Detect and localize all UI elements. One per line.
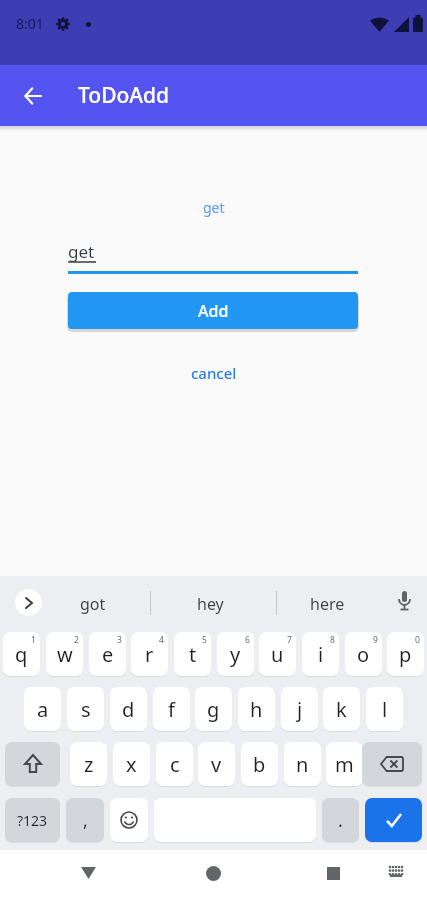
staticText: n	[296, 751, 309, 778]
staticText: e	[102, 641, 114, 668]
button[interactable]: l	[366, 687, 403, 731]
button[interactable]: b	[241, 742, 278, 786]
staticText: d	[122, 696, 135, 723]
button[interactable]: t	[174, 632, 211, 676]
staticText: 8:01	[16, 14, 44, 33]
button[interactable]: r	[131, 632, 168, 676]
button[interactable]: ,	[66, 798, 104, 842]
button[interactable]: j	[281, 687, 318, 731]
staticText: t	[189, 641, 197, 668]
staticText: ,	[83, 808, 88, 833]
staticText: f	[168, 696, 175, 723]
button[interactable]: e	[89, 632, 126, 676]
staticText: g	[207, 696, 220, 723]
button[interactable]: o	[345, 632, 382, 676]
button[interactable]: here	[310, 593, 345, 615]
staticText: y	[230, 641, 241, 668]
staticText: get	[203, 198, 225, 217]
button[interactable]: cancel	[191, 363, 237, 383]
staticText: q	[15, 641, 28, 668]
staticText: 4	[159, 634, 164, 646]
button[interactable]: f	[153, 687, 190, 731]
staticText: k	[336, 696, 347, 723]
staticText: get	[68, 240, 95, 263]
staticText: 6	[245, 634, 250, 646]
staticText: r	[145, 641, 154, 668]
staticText: m	[335, 751, 354, 778]
button[interactable]: m	[326, 742, 363, 786]
staticText: b	[253, 751, 266, 778]
staticText: w	[57, 641, 73, 668]
button[interactable]: ?123	[5, 798, 60, 842]
button[interactable]: v	[198, 742, 235, 786]
staticText: u	[271, 641, 284, 668]
button[interactable]	[68, 853, 108, 893]
staticText: c	[170, 751, 180, 778]
button[interactable]	[365, 798, 422, 842]
staticText: ?123	[17, 811, 48, 830]
button[interactable]: q	[3, 632, 40, 676]
staticText: h	[250, 696, 263, 723]
staticText: x	[126, 751, 137, 778]
staticText: a	[37, 696, 49, 723]
button[interactable]: w	[46, 632, 83, 676]
staticText: j	[297, 696, 303, 723]
button[interactable]: u	[259, 632, 296, 676]
button[interactable]: got	[80, 593, 106, 615]
button[interactable]	[15, 589, 42, 616]
button[interactable]: Add	[68, 292, 358, 329]
button[interactable]	[398, 591, 411, 615]
button[interactable]: z	[70, 742, 107, 786]
button[interactable]	[362, 742, 422, 786]
button[interactable]: c	[156, 742, 193, 786]
staticText: 9	[373, 634, 378, 646]
staticText: 8	[330, 634, 335, 646]
staticText: 2	[74, 634, 79, 646]
button[interactable]: i	[302, 632, 339, 676]
button[interactable]: k	[323, 687, 360, 731]
staticText: l	[382, 696, 388, 723]
staticText: o	[357, 641, 370, 668]
button[interactable]: hey	[197, 593, 224, 615]
staticText: i	[318, 641, 324, 668]
button[interactable]: p	[387, 632, 424, 676]
button[interactable]: s	[67, 687, 104, 731]
button[interactable]	[5, 742, 60, 786]
staticText: ToDoAdd	[78, 81, 170, 110]
staticText: .	[338, 808, 343, 833]
staticText: Add	[198, 300, 229, 322]
button[interactable]	[12, 75, 54, 117]
button[interactable]	[110, 798, 148, 842]
button[interactable]	[313, 853, 353, 893]
staticText: z	[84, 751, 94, 778]
staticText: 1	[31, 634, 36, 646]
button[interactable]: n	[284, 742, 321, 786]
button[interactable]: a	[24, 687, 61, 731]
staticText: 7	[287, 634, 292, 646]
staticText: v	[211, 751, 222, 778]
staticText: 3	[117, 634, 122, 646]
button[interactable]: g	[195, 687, 232, 731]
button[interactable]: h	[238, 687, 275, 731]
button[interactable]	[378, 853, 414, 889]
button[interactable]	[193, 853, 233, 893]
staticText: s	[81, 696, 91, 723]
staticText: p	[399, 641, 412, 668]
staticText: 5	[202, 634, 207, 646]
button[interactable]: .	[322, 798, 359, 842]
button[interactable]: x	[113, 742, 150, 786]
staticText: 0	[415, 634, 420, 646]
button[interactable]: d	[110, 687, 147, 731]
button[interactable]: y	[217, 632, 254, 676]
